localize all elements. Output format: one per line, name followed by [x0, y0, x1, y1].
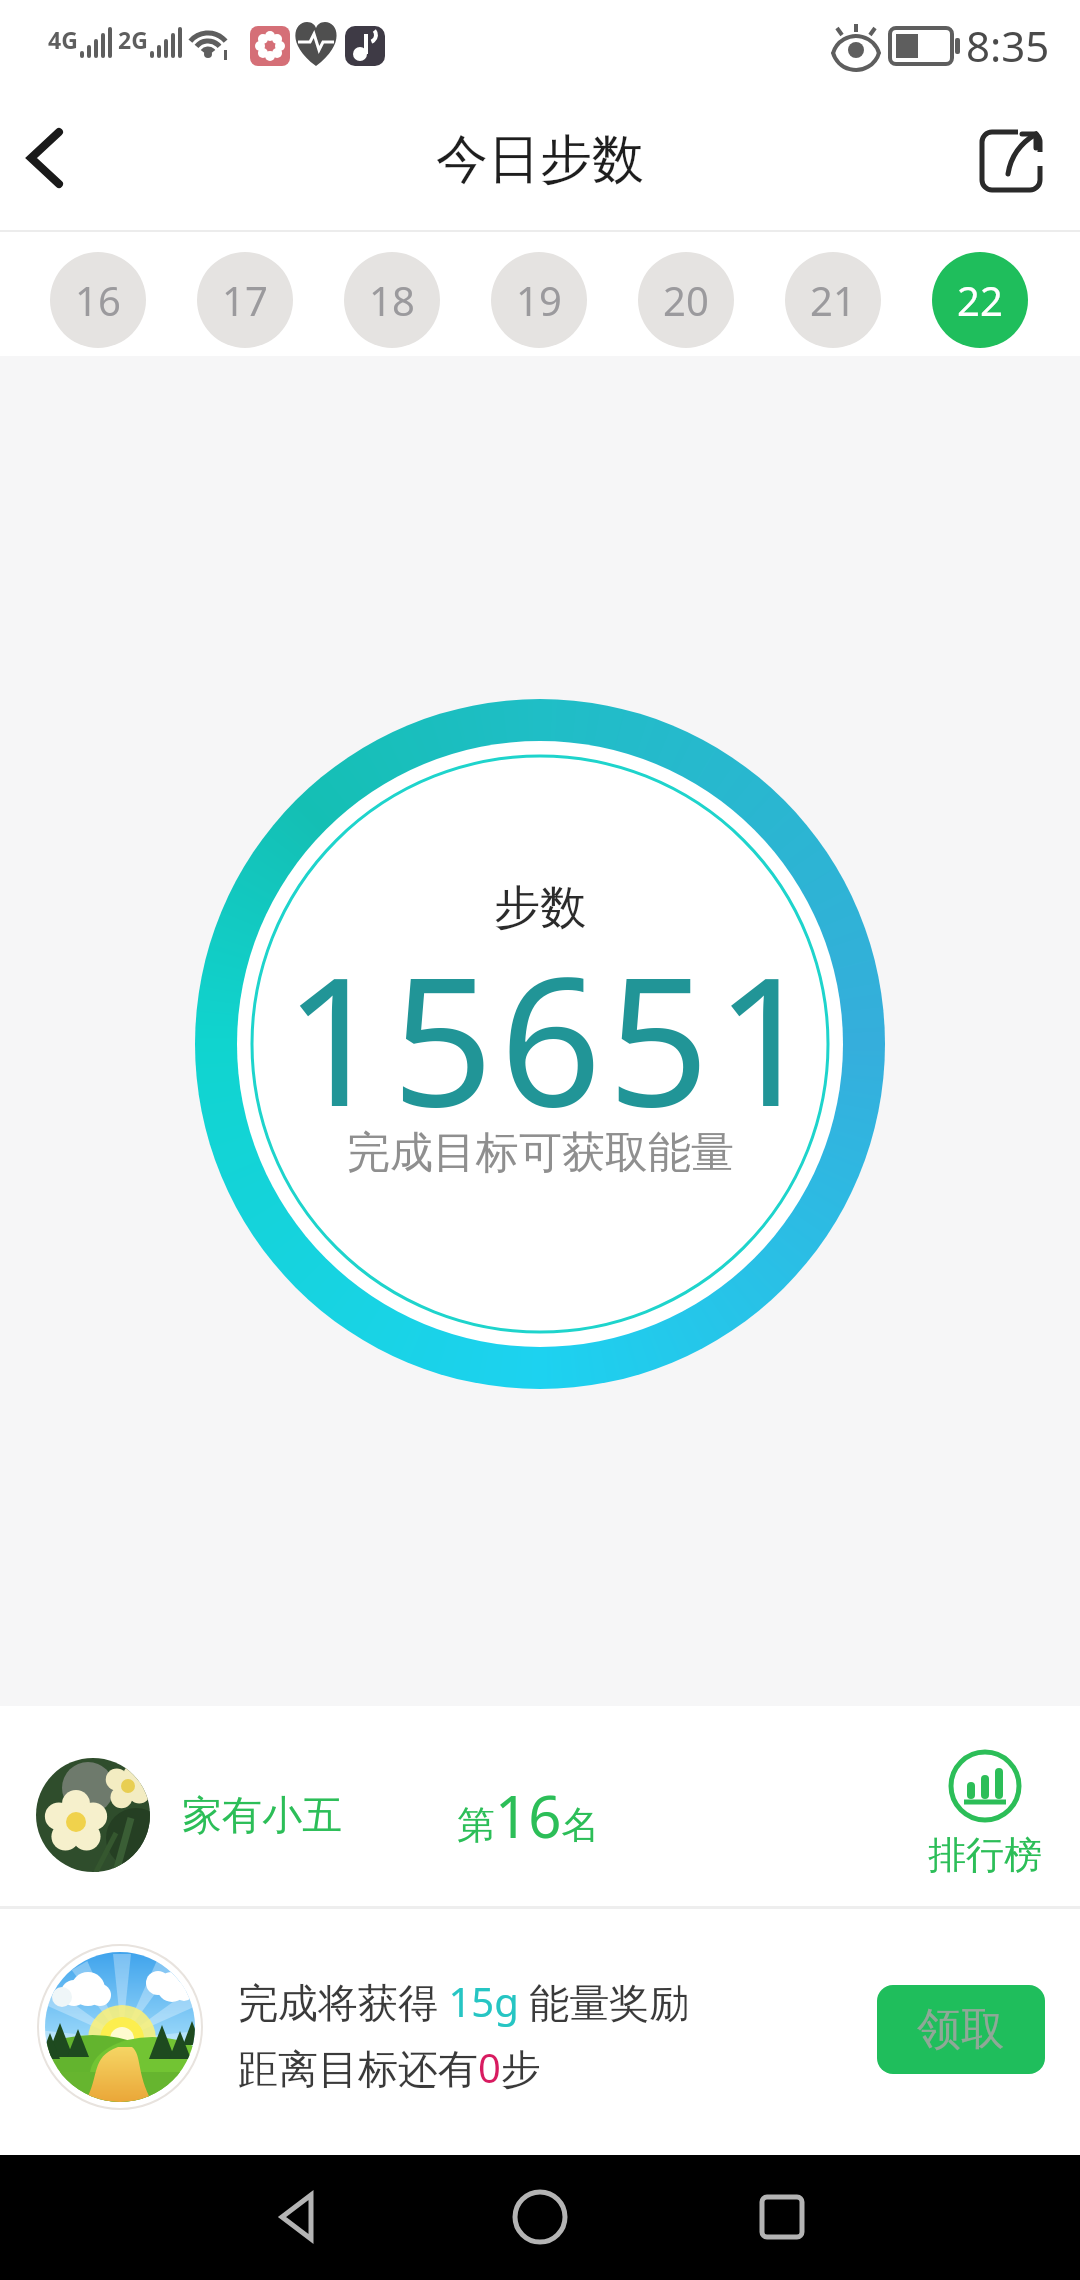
staticText: 20: [663, 273, 709, 327]
button[interactable]: [972, 110, 1052, 210]
button[interactable]: [490, 2162, 590, 2272]
staticText: 今日步数: [436, 127, 644, 193]
button[interactable]: 22: [932, 252, 1028, 348]
button[interactable]: 18: [344, 252, 440, 348]
staticText: 15651: [284, 916, 824, 1136]
button[interactable]: 19: [491, 252, 587, 348]
button[interactable]: 20: [638, 252, 734, 348]
staticText: 排行榜: [928, 1831, 1042, 1879]
staticText: 2G: [118, 24, 148, 55]
staticText: 8:35: [966, 17, 1050, 74]
button[interactable]: [248, 2162, 348, 2272]
staticText: 距离目标还有0步: [238, 2040, 541, 2095]
staticText: 18: [369, 273, 415, 327]
staticText: 17: [222, 273, 268, 327]
staticText: 完成目标可获取能量: [347, 1126, 734, 1180]
button[interactable]: [0, 90, 90, 230]
button[interactable]: [732, 2162, 832, 2272]
staticText: 第16名: [457, 1776, 600, 1855]
button[interactable]: 家有小五: [0, 1706, 1080, 1906]
button[interactable]: 排行榜: [928, 1749, 1042, 1879]
staticText: 领取: [917, 2002, 1005, 2057]
staticText: 步数: [494, 879, 586, 937]
button[interactable]: 17: [197, 252, 293, 348]
staticText: 家有小五: [182, 1790, 342, 1840]
staticText: 16: [75, 273, 121, 327]
staticText: 4G: [48, 24, 78, 55]
staticText: 19: [516, 273, 562, 327]
button[interactable]: 领取: [877, 1985, 1045, 2074]
staticText: 22: [957, 273, 1003, 327]
staticText: 21: [810, 273, 856, 327]
staticText: 完成将获得 15g 能量奖励: [238, 1974, 690, 2029]
button[interactable]: 21: [785, 252, 881, 348]
button[interactable]: 16: [50, 252, 146, 348]
